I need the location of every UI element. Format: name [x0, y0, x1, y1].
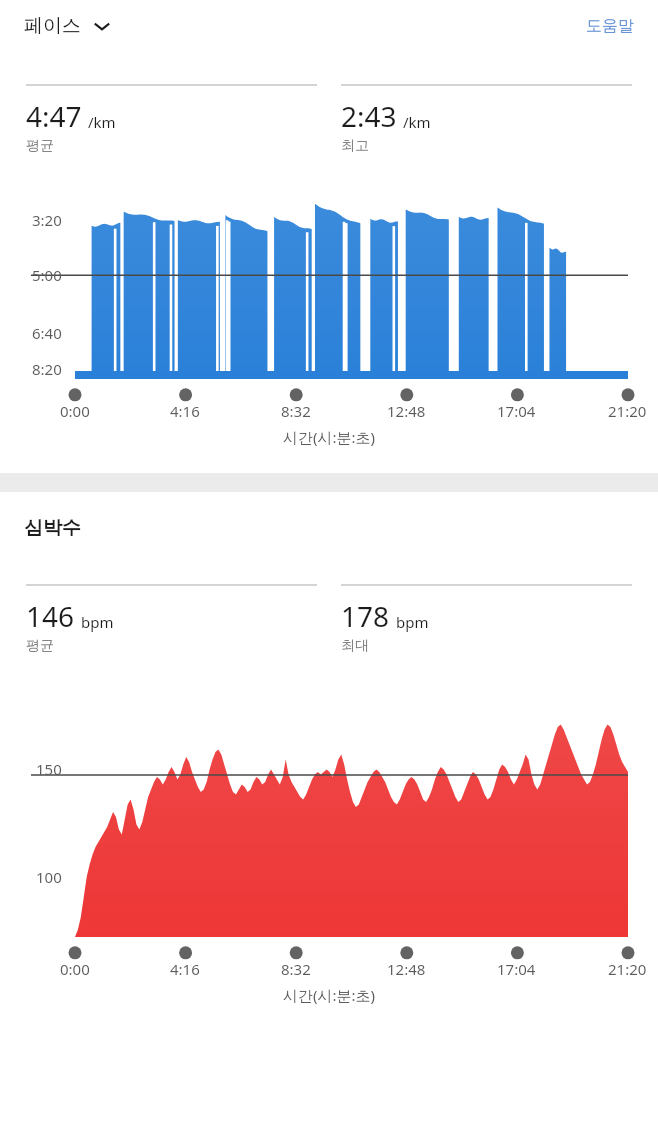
staticText: 5:00 — [32, 265, 62, 285]
staticText: 17:04 — [497, 401, 536, 421]
staticText: 8:20 — [32, 359, 62, 379]
staticText: bpm — [396, 612, 429, 632]
staticText: 150 — [36, 759, 62, 779]
staticText: 2:43 — [341, 97, 397, 135]
staticText: 0:00 — [60, 401, 90, 421]
staticText: 146 — [26, 597, 75, 635]
staticText: 4:16 — [170, 401, 200, 421]
staticText: /km — [88, 112, 116, 132]
staticText: 8:32 — [281, 959, 311, 979]
staticText: 12:48 — [387, 959, 426, 979]
button[interactable]: 2:43 — [341, 84, 632, 155]
staticText: bpm — [81, 612, 114, 632]
staticText: 시간(시:분:초) — [0, 427, 658, 447]
button[interactable]: 4:47 — [26, 84, 317, 155]
staticText: 평균 — [26, 637, 54, 655]
staticText: 심박수 — [24, 516, 81, 540]
button[interactable]: 페이스 — [24, 14, 114, 38]
staticText: 3:20 — [32, 210, 62, 230]
staticText: 8:32 — [281, 401, 311, 421]
staticText: 4:16 — [170, 959, 200, 979]
button[interactable]: 178 — [341, 584, 632, 655]
staticText: 17:04 — [497, 959, 536, 979]
staticText: 21:20 — [608, 959, 647, 979]
staticText: 12:48 — [387, 401, 426, 421]
staticText: 100 — [36, 867, 62, 887]
staticText: 0:00 — [60, 959, 90, 979]
staticText: 최대 — [341, 637, 369, 655]
staticText: 최고 — [341, 137, 369, 155]
staticText: 시간(시:분:초) — [0, 985, 658, 1005]
staticText: 도움말 — [586, 16, 634, 36]
staticText: 21:20 — [608, 401, 647, 421]
staticText: 178 — [341, 597, 390, 635]
staticText: /km — [403, 112, 431, 132]
other: Change metric — [90, 14, 114, 38]
button[interactable]: 146 — [26, 584, 317, 655]
staticText: 평균 — [26, 137, 54, 155]
button[interactable]: 도움말 — [586, 16, 634, 36]
staticText: 6:40 — [32, 323, 62, 343]
staticText: 4:47 — [26, 97, 82, 135]
staticText: 페이스 — [24, 14, 81, 38]
